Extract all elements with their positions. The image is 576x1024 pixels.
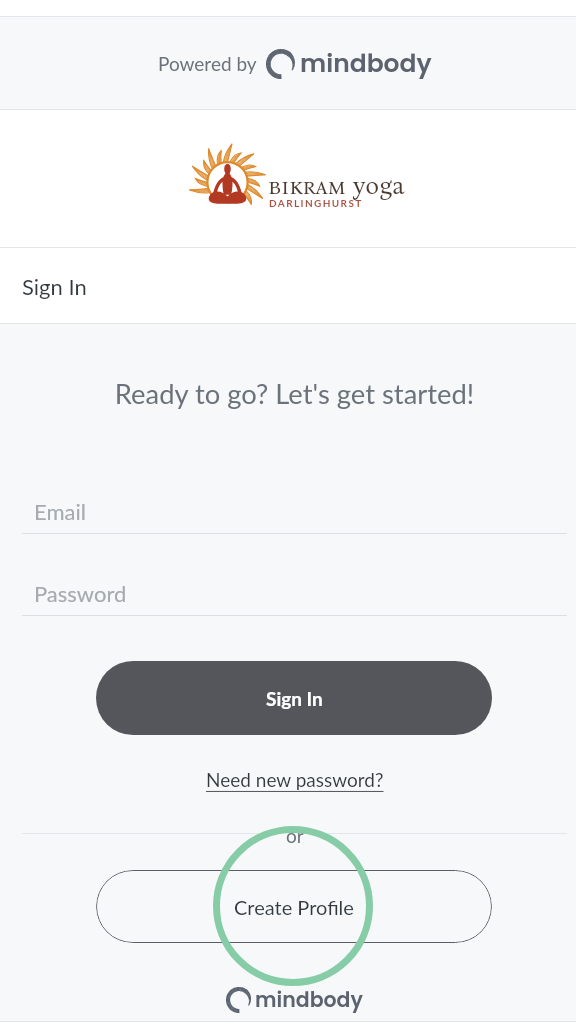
staticText: DARLINGHURST [269,197,363,209]
staticText: Sign In [266,687,323,710]
staticText: Email [34,498,86,524]
staticText: mindbody [255,985,363,1014]
staticText: Ready to go? Let's get started! [22,377,567,410]
button[interactable]: Password [22,577,567,616]
button[interactable]: Email [22,495,567,534]
staticText: bikram [268,173,346,201]
staticText: or [286,824,304,847]
staticText: Sign In [22,273,87,299]
staticText: Powered by [158,52,257,75]
staticText: Create Profile [234,895,354,919]
staticText: mindbody [300,46,432,81]
staticText: Password [34,580,127,606]
button[interactable]: Create Profile [96,870,492,943]
button[interactable]: Sign In [96,661,492,735]
staticText: yoga [353,170,405,201]
button[interactable]: Need new password? [202,768,388,791]
